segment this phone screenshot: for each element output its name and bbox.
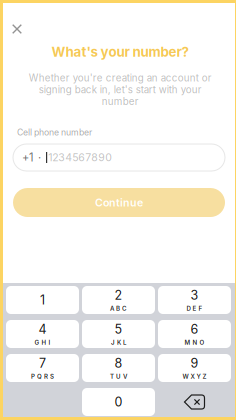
button[interactable]: 2 bbox=[82, 286, 155, 314]
staticText: 1 bbox=[40, 292, 45, 308]
staticText: M N O bbox=[184, 339, 204, 346]
button[interactable]: Delete bbox=[158, 388, 231, 416]
staticText: 8 bbox=[114, 356, 122, 371]
staticText: 5 bbox=[114, 322, 122, 337]
staticText: P Q R S bbox=[31, 373, 54, 380]
button[interactable]: 7 bbox=[6, 354, 79, 382]
button[interactable]: 4 bbox=[6, 320, 79, 348]
staticText: 7 bbox=[39, 356, 46, 371]
staticText: 6 bbox=[190, 322, 198, 337]
staticText: T U V bbox=[110, 373, 127, 380]
staticText: +1 bbox=[22, 151, 34, 164]
staticText: 2 bbox=[114, 288, 122, 303]
staticText: 4 bbox=[38, 322, 46, 337]
staticText: Cell phone number bbox=[17, 127, 92, 137]
staticText: What's your number? bbox=[51, 44, 188, 60]
staticText: J K L bbox=[111, 339, 126, 346]
staticText: A B C bbox=[110, 305, 127, 312]
staticText: D E F bbox=[186, 305, 202, 312]
staticText: Whether you're creating an account or si… bbox=[28, 72, 211, 107]
staticText: 9 bbox=[190, 356, 198, 371]
button[interactable]: 6 bbox=[158, 320, 231, 348]
staticText: G H I bbox=[34, 339, 50, 346]
button[interactable]: Close bbox=[4, 16, 30, 42]
staticText: 0 bbox=[114, 394, 122, 410]
button[interactable]: 0 bbox=[82, 388, 155, 416]
button[interactable]: 9 bbox=[158, 354, 231, 382]
staticText: 1234567890 bbox=[48, 151, 112, 164]
button[interactable]: Continue bbox=[13, 188, 225, 217]
staticText: 3 bbox=[190, 288, 198, 303]
button[interactable]: 8 bbox=[82, 354, 155, 382]
staticText: Continue bbox=[95, 196, 143, 209]
button[interactable]: 3 bbox=[158, 286, 231, 314]
button[interactable]: 1 bbox=[6, 286, 79, 314]
staticText: W X Y Z bbox=[182, 373, 206, 380]
button[interactable]: 5 bbox=[82, 320, 155, 348]
staticText: · bbox=[38, 151, 41, 164]
